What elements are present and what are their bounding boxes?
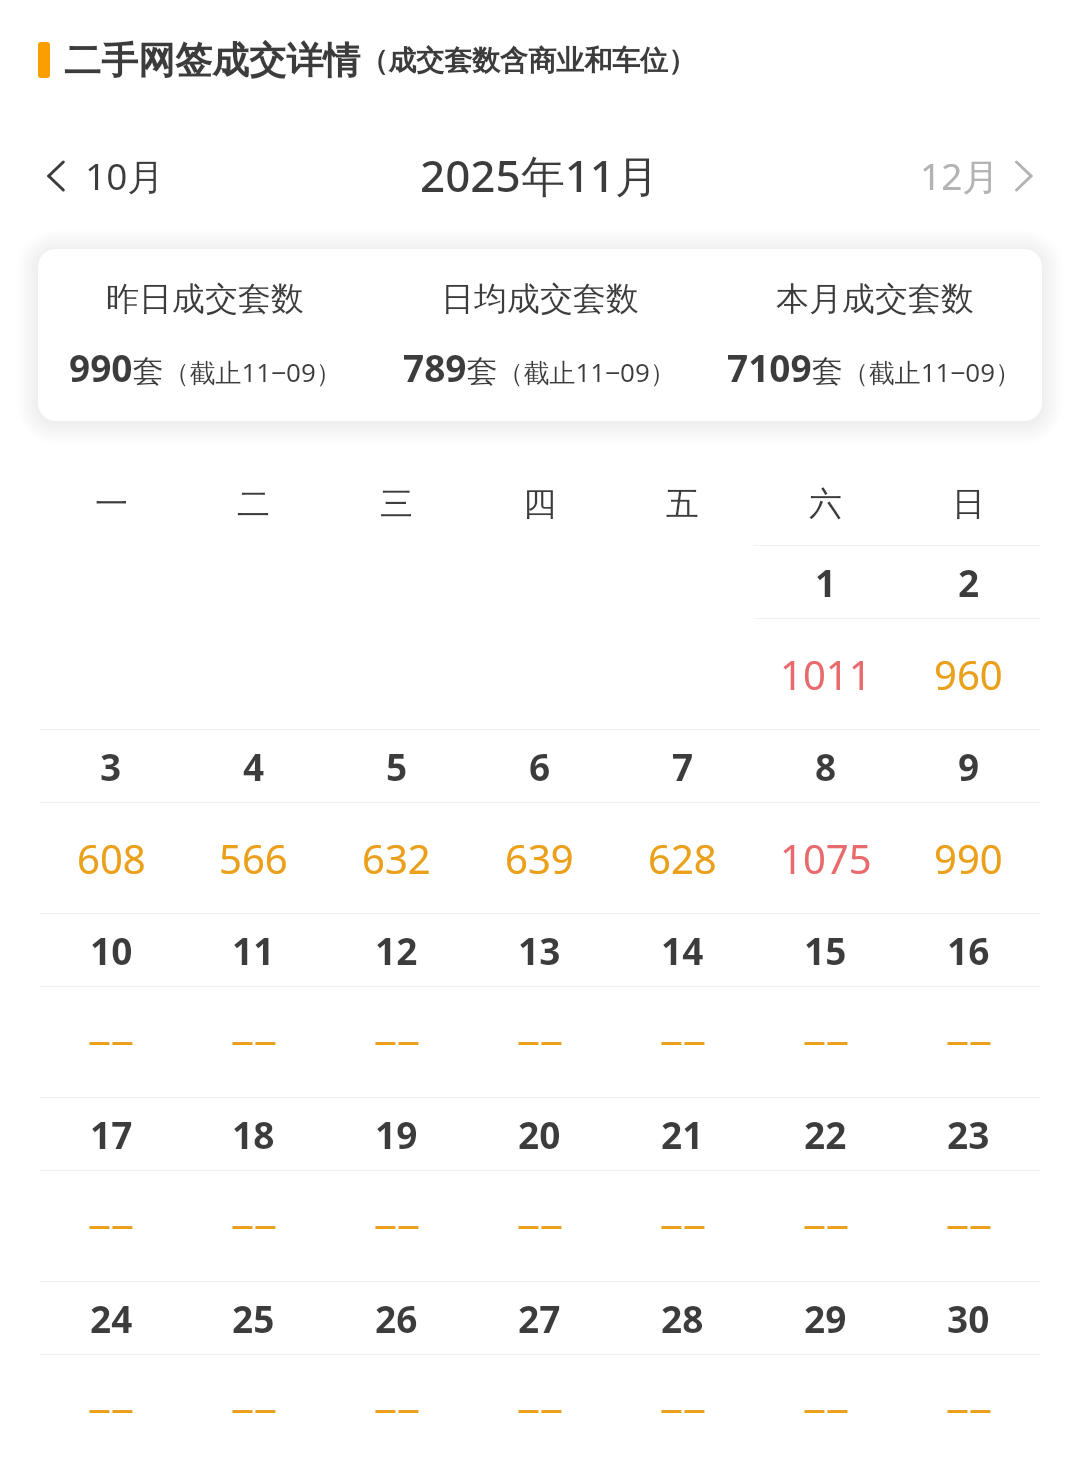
- staticText: 566: [219, 831, 288, 885]
- button[interactable]: 24: [40, 1281, 182, 1465]
- button[interactable]: 1: [754, 545, 897, 729]
- button[interactable]: 6: [468, 729, 611, 913]
- button[interactable]: 14: [611, 913, 754, 1097]
- staticText: ‒‒: [374, 1015, 420, 1069]
- staticText: ‒‒: [660, 1383, 706, 1437]
- button[interactable]: 17: [40, 1097, 182, 1281]
- staticText: 18: [232, 1109, 275, 1159]
- staticText: ‒‒: [946, 1015, 992, 1069]
- staticText: 632: [362, 831, 431, 885]
- button[interactable]: 19: [325, 1097, 468, 1281]
- staticText: 11: [232, 925, 275, 975]
- staticText: 1011: [780, 647, 872, 701]
- staticText: ‒‒: [946, 1383, 992, 1437]
- staticText: 17: [90, 1109, 133, 1159]
- button[interactable]: 12月: [920, 150, 1042, 201]
- button[interactable]: 4: [182, 729, 325, 913]
- button[interactable]: 23: [897, 1097, 1040, 1281]
- staticText: ‒‒: [88, 1383, 134, 1437]
- staticText: 789套（截止11‒09）: [403, 342, 676, 392]
- button[interactable]: 16: [897, 913, 1040, 1097]
- button[interactable]: 27: [468, 1281, 611, 1465]
- staticText: 10: [90, 925, 133, 975]
- button[interactable]: 26: [325, 1281, 468, 1465]
- staticText: 本月成交套数: [776, 278, 974, 320]
- staticText: 二手网签成交详情: [64, 37, 360, 84]
- staticText: 3: [100, 741, 122, 791]
- staticText: 29: [804, 1293, 847, 1343]
- staticText: 19: [375, 1109, 418, 1159]
- staticText: 28: [661, 1293, 704, 1343]
- button[interactable]: 22: [754, 1097, 897, 1281]
- button[interactable]: 13: [468, 913, 611, 1097]
- button[interactable]: 20: [468, 1097, 611, 1281]
- staticText: ‒‒: [374, 1383, 420, 1437]
- other: Previous month: [38, 159, 72, 193]
- staticText: ‒‒: [231, 1199, 277, 1253]
- staticText: ‒‒: [660, 1199, 706, 1253]
- button[interactable]: 12: [325, 913, 468, 1097]
- staticText: 7: [672, 741, 694, 791]
- button[interactable]: 8: [754, 729, 897, 913]
- staticText: 五: [666, 483, 699, 525]
- staticText: 5: [386, 741, 408, 791]
- button[interactable]: 10: [40, 913, 182, 1097]
- staticText: 608: [77, 831, 146, 885]
- staticText: 628: [648, 831, 717, 885]
- staticText: 13: [518, 925, 561, 975]
- button[interactable]: 7: [611, 729, 754, 913]
- staticText: 六: [809, 483, 842, 525]
- staticText: 10月: [85, 150, 165, 201]
- button[interactable]: 11: [182, 913, 325, 1097]
- staticText: ‒‒: [517, 1199, 563, 1253]
- staticText: 25: [232, 1293, 275, 1343]
- button[interactable]: Previous month: [38, 150, 165, 201]
- staticText: ‒‒: [803, 1015, 849, 1069]
- button[interactable]: 昨日成交套数: [38, 249, 1042, 421]
- button[interactable]: 15: [754, 913, 897, 1097]
- staticText: 24: [90, 1293, 133, 1343]
- staticText: 990: [934, 831, 1003, 885]
- staticText: （成交套数含商业和车位）: [360, 43, 696, 78]
- staticText: ‒‒: [231, 1383, 277, 1437]
- staticText: 15: [804, 925, 847, 975]
- button[interactable]: 29: [754, 1281, 897, 1465]
- staticText: 昨日成交套数: [106, 278, 304, 320]
- staticText: ‒‒: [660, 1015, 706, 1069]
- staticText: 三: [380, 483, 413, 525]
- button[interactable]: 9: [897, 729, 1040, 913]
- staticText: 二: [237, 483, 270, 525]
- button[interactable]: 25: [182, 1281, 325, 1465]
- staticText: 12: [375, 925, 418, 975]
- button[interactable]: 30: [897, 1281, 1040, 1465]
- button[interactable]: 21: [611, 1097, 754, 1281]
- staticText: 一: [95, 483, 128, 525]
- staticText: 日: [952, 483, 985, 525]
- staticText: ‒‒: [88, 1015, 134, 1069]
- button[interactable]: 5: [325, 729, 468, 913]
- staticText: 16: [947, 925, 990, 975]
- staticText: 21: [661, 1109, 704, 1159]
- staticText: 30: [947, 1293, 990, 1343]
- other: Next month: [1008, 159, 1042, 193]
- staticText: 639: [505, 831, 574, 885]
- staticText: 20: [518, 1109, 561, 1159]
- button[interactable]: 3: [40, 729, 182, 913]
- staticText: 1075: [780, 831, 872, 885]
- staticText: ‒‒: [88, 1199, 134, 1253]
- staticText: 7109套（截止11‒09）: [727, 342, 1022, 392]
- staticText: 12月: [920, 150, 1000, 201]
- button[interactable]: 18: [182, 1097, 325, 1281]
- staticText: 4: [243, 741, 265, 791]
- staticText: ‒‒: [517, 1383, 563, 1437]
- staticText: 9: [958, 741, 980, 791]
- button[interactable]: 2: [897, 545, 1040, 729]
- button[interactable]: 28: [611, 1281, 754, 1465]
- staticText: 960: [934, 647, 1003, 701]
- staticText: 27: [518, 1293, 561, 1343]
